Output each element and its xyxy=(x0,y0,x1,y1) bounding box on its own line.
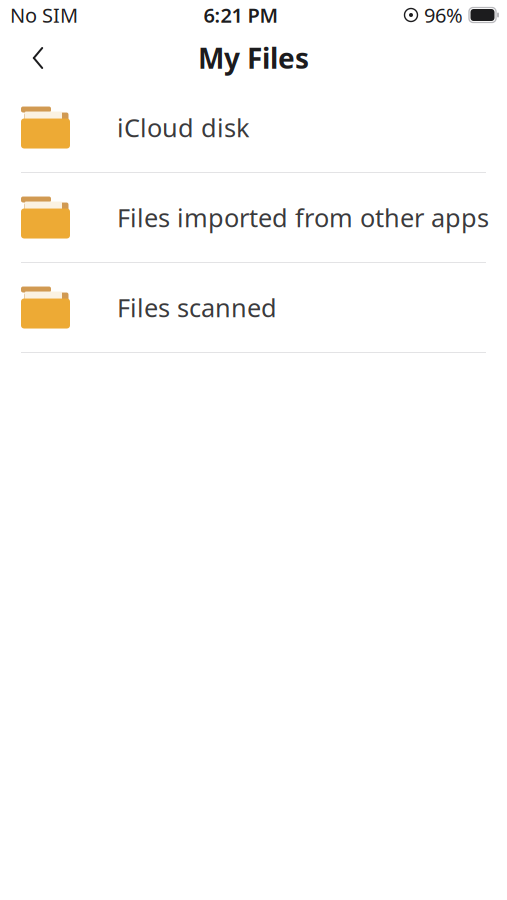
staticText: 6:21 PM xyxy=(203,2,278,28)
staticText: Files imported from other apps xyxy=(117,201,489,234)
button[interactable]: iCloud disk xyxy=(0,83,507,173)
staticText: Files scanned xyxy=(117,291,277,324)
staticText: iCloud disk xyxy=(117,111,250,144)
button[interactable]: Back xyxy=(16,36,60,80)
staticText: My Files xyxy=(198,39,309,77)
button[interactable]: Files scanned xyxy=(0,263,507,353)
button[interactable]: Files imported from other apps xyxy=(0,173,507,263)
staticText: 96% xyxy=(424,2,463,28)
staticText: No SIM xyxy=(10,2,78,28)
